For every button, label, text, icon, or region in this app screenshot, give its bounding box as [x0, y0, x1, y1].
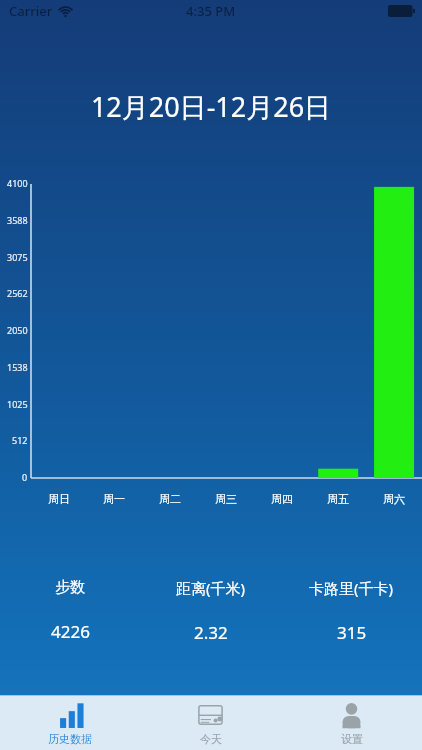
- button[interactable]: 历史数据: [0, 696, 140, 750]
- button[interactable]: 今天: [140, 696, 281, 750]
- staticText: 卡路里(千卡): [309, 578, 394, 598]
- staticText: 2.32: [194, 621, 228, 644]
- staticText: 步数: [55, 578, 85, 597]
- other: 今天: [196, 701, 225, 730]
- staticText: 周六: [383, 492, 405, 506]
- staticText: 3075: [7, 251, 28, 263]
- staticText: 315: [337, 621, 367, 644]
- staticText: 1025: [7, 398, 28, 410]
- button[interactable]: 设置: [281, 696, 422, 750]
- staticText: 今天: [200, 732, 222, 746]
- staticText: 2562: [7, 287, 28, 299]
- staticText: 512: [12, 434, 28, 446]
- staticText: 12月20日-12月26日: [0, 88, 422, 125]
- staticText: 4:35 PM: [186, 2, 236, 20]
- staticText: 1538: [7, 361, 28, 373]
- staticText: 4226: [51, 620, 90, 643]
- staticText: 周三: [215, 492, 237, 506]
- staticText: 设置: [341, 732, 363, 746]
- staticText: 3588: [7, 214, 28, 226]
- staticText: 周五: [327, 492, 349, 506]
- staticText: 周四: [271, 492, 293, 506]
- other: 历史数据: [56, 701, 85, 730]
- staticText: Carrier: [9, 2, 53, 20]
- staticText: 4100: [7, 177, 28, 189]
- staticText: 周日: [48, 492, 70, 506]
- staticText: 历史数据: [48, 732, 92, 746]
- staticText: 距离(千米): [176, 578, 246, 598]
- staticText: 0: [22, 471, 28, 483]
- staticText: 2050: [7, 324, 28, 336]
- other: 设置: [337, 701, 366, 730]
- staticText: 周一: [103, 492, 125, 506]
- staticText: 周二: [159, 492, 181, 506]
